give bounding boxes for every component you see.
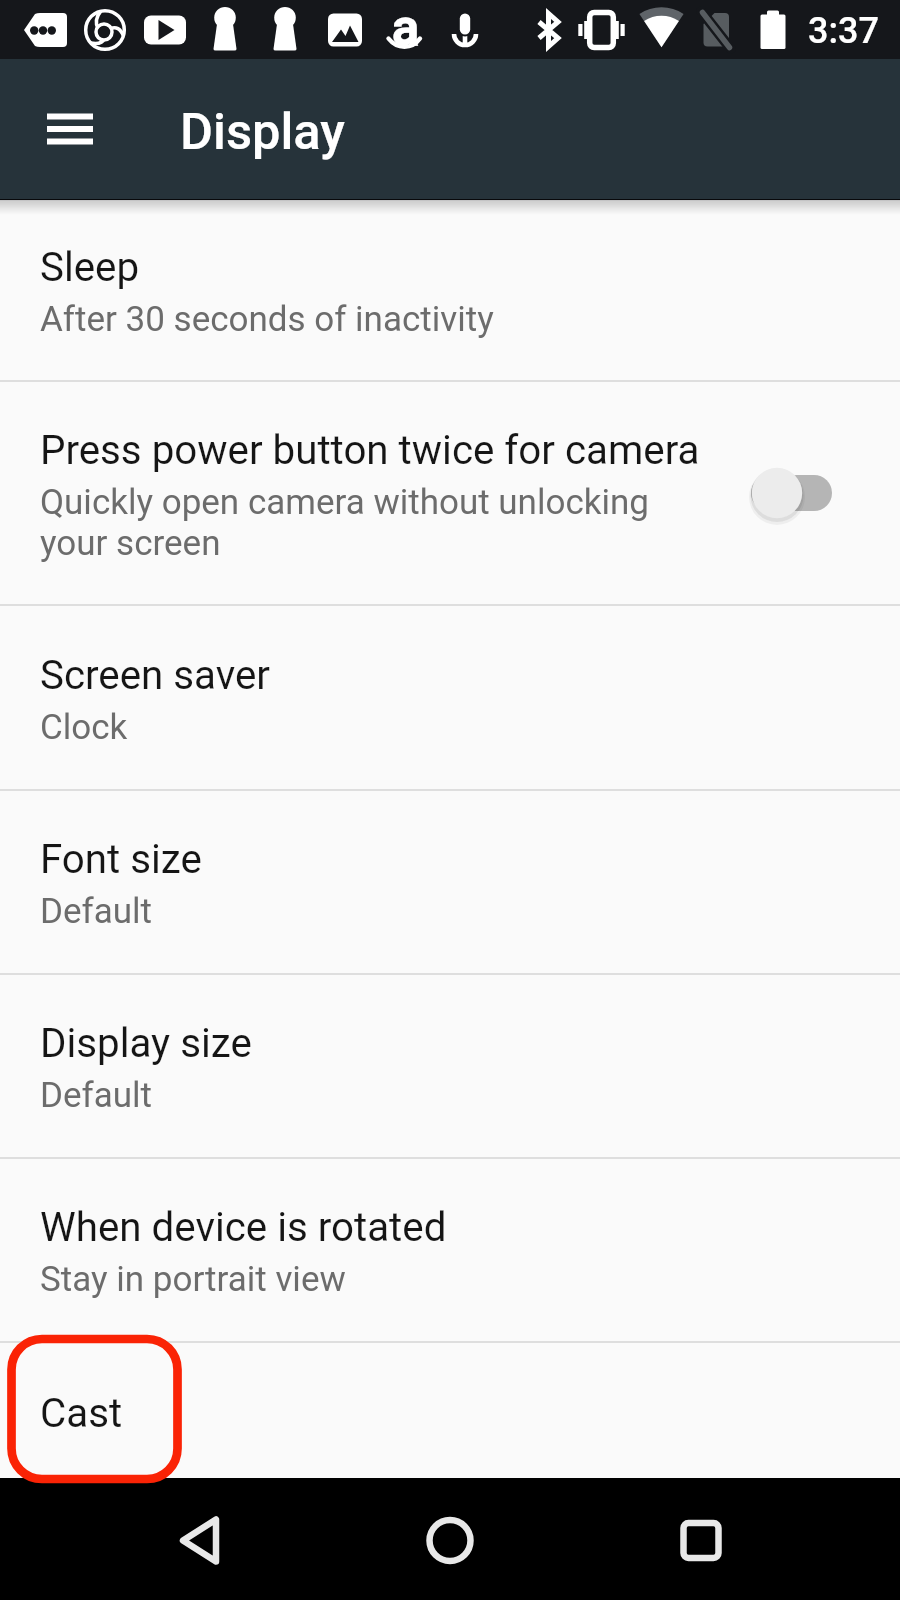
staticText: a [392,0,420,58]
button[interactable]: Home [390,1479,510,1599]
button[interactable]: When device is rotated [0,1159,900,1341]
button[interactable]: Cast [0,1343,900,1478]
staticText: Clock [40,707,128,748]
staticText: Display size [40,1020,252,1067]
staticText: your screen [40,523,221,564]
button[interactable]: Open navigation menu [29,88,111,170]
staticText: Default [40,1075,152,1116]
staticText: Display [180,102,345,161]
button[interactable]: Recent apps [641,1479,761,1599]
button[interactable]: Toggle press power button twice for came… [726,445,856,541]
staticText: When device is rotated [40,1204,447,1251]
button[interactable]: Font size [0,791,900,973]
staticText: After 30 seconds of inactivity [40,299,494,340]
button[interactable]: Sleep [0,199,900,380]
staticText: Quickly open camera without unlocking [40,482,649,523]
staticText: Cast [40,1390,123,1437]
staticText: Stay in portrait view [40,1259,346,1300]
button[interactable]: Press power button twice for camera [0,382,900,604]
button[interactable]: Screen saver [0,606,900,789]
button[interactable]: Display size [0,975,900,1157]
staticText: Press power button twice for camera [40,427,700,474]
staticText: 3:37 [808,10,879,52]
staticText: Sleep [40,244,140,291]
staticText: Default [40,891,152,932]
staticText: Screen saver [40,652,270,699]
button[interactable]: Back [142,1479,262,1599]
staticText: Font size [40,836,202,883]
